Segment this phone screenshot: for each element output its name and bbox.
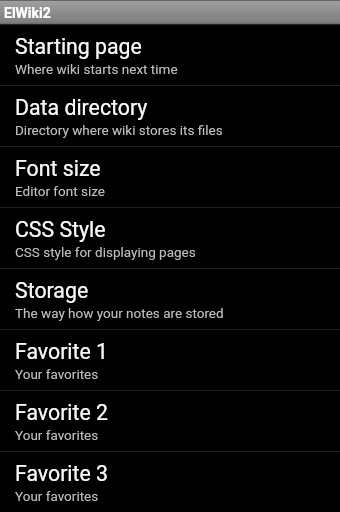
- staticText: Data directory: [15, 95, 148, 120]
- staticText: The way how your notes are stored: [15, 305, 224, 321]
- staticText: Favorite 2: [15, 400, 109, 425]
- button[interactable]: ElWiki2: [0, 0, 340, 25]
- staticText: Starting page: [15, 34, 142, 59]
- button[interactable]: Starting page: [0, 25, 340, 85]
- staticText: Your favorites: [15, 427, 99, 443]
- button[interactable]: CSS Style: [0, 208, 340, 268]
- staticText: Favorite 3: [15, 461, 109, 486]
- button[interactable]: Storage: [0, 269, 340, 329]
- button[interactable]: Favorite 2: [0, 391, 340, 451]
- button[interactable]: Favorite 1: [0, 330, 340, 390]
- staticText: ElWiki2: [4, 5, 51, 21]
- button[interactable]: Favorite 3: [0, 452, 340, 512]
- staticText: CSS style for displaying pages: [15, 244, 196, 260]
- staticText: Your favorites: [15, 488, 99, 504]
- staticText: Favorite 1: [15, 339, 109, 364]
- staticText: CSS Style: [15, 217, 106, 242]
- staticText: Directory where wiki stores its files: [15, 122, 223, 138]
- staticText: Your favorites: [15, 366, 99, 382]
- staticText: Editor font size: [15, 183, 105, 199]
- button[interactable]: Data directory: [0, 86, 340, 146]
- staticText: Font size: [15, 156, 101, 181]
- staticText: Where wiki starts next time: [15, 61, 178, 77]
- staticText: Storage: [15, 278, 89, 303]
- button[interactable]: Font size: [0, 147, 340, 207]
